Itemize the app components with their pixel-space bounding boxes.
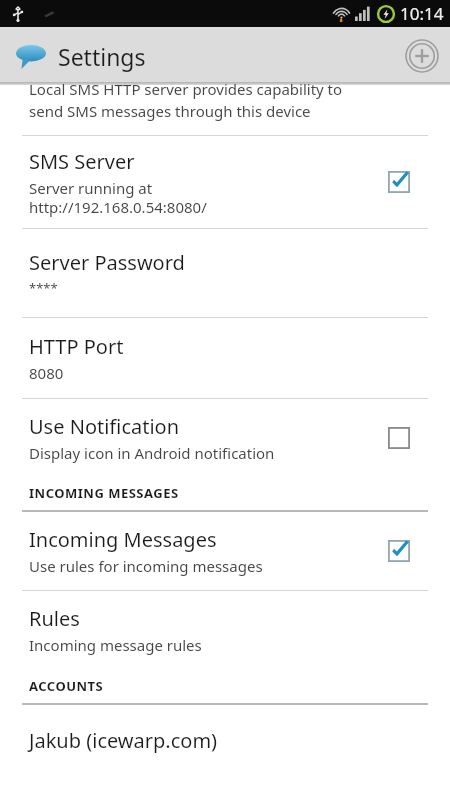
- button[interactable]: Server Password: [0, 229, 450, 317]
- staticText: Incoming message rules: [29, 635, 202, 655]
- staticText: HTTP Port: [29, 333, 124, 360]
- staticText: 10:14: [400, 2, 444, 25]
- staticText: Jakub (icewarp.com): [29, 727, 218, 754]
- button[interactable]: Add: [394, 28, 450, 84]
- button[interactable]: Incoming Messages: [0, 512, 450, 590]
- staticText: SMS Server: [29, 148, 135, 175]
- staticText: Rules: [29, 605, 80, 632]
- button[interactable]: Use Notification: [0, 399, 450, 476]
- button[interactable]: SMS Server: [0, 136, 450, 228]
- staticText: INCOMING MESSAGES: [29, 484, 179, 502]
- button[interactable]: Rules: [0, 591, 450, 669]
- button[interactable]: HTTP Port: [0, 318, 450, 398]
- staticText: ACCOUNTS: [29, 677, 104, 695]
- staticText: Use rules for incoming messages: [29, 556, 263, 576]
- button[interactable]: Toggle SMS Server: [382, 165, 416, 199]
- staticText: send SMS messages through this device: [29, 101, 311, 121]
- staticText: Settings: [58, 41, 146, 72]
- button[interactable]: Local SMS HTTP server provides capabilit…: [0, 85, 450, 135]
- staticText: ****: [29, 279, 58, 297]
- staticText: Server running at http://192.168.0.54:80…: [29, 178, 207, 217]
- staticText: Local SMS HTTP server provides capabilit…: [29, 79, 343, 99]
- staticText: Display icon in Android notification: [29, 443, 275, 463]
- button[interactable]: Toggle Incoming Messages: [382, 534, 416, 568]
- button[interactable]: Jakub (icewarp.com): [0, 705, 450, 775]
- staticText: Server Password: [29, 249, 185, 276]
- staticText: Incoming Messages: [29, 526, 217, 553]
- staticText: Use Notification: [29, 413, 180, 440]
- button[interactable]: Toggle Use Notification: [382, 421, 416, 455]
- staticText: 8080: [29, 363, 64, 383]
